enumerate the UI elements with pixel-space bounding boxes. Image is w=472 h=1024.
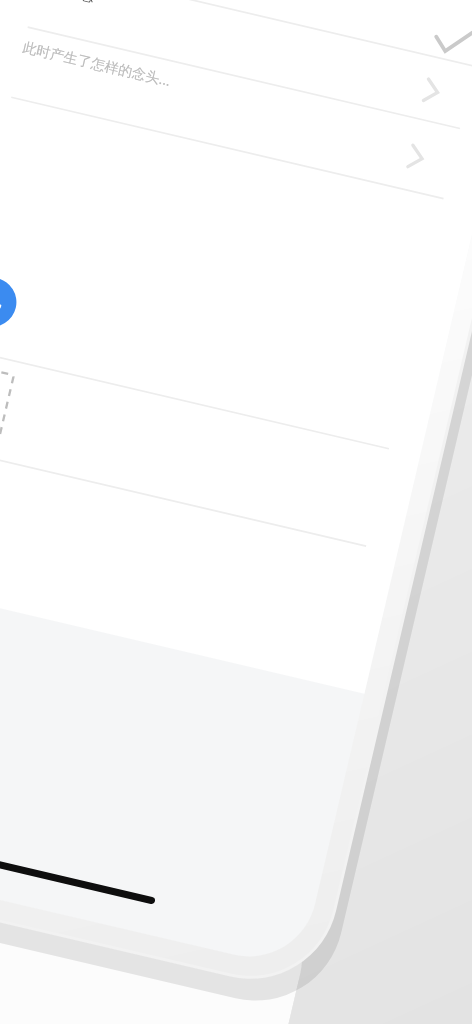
button[interactable]: Date and time 2月9日 22:25 xyxy=(27,0,472,69)
button[interactable]: Save xyxy=(404,3,472,76)
staticText: 此时产生了怎样的念头... xyxy=(21,37,173,90)
button[interactable]: Voice input xyxy=(0,271,25,336)
staticText: 生活随想 xyxy=(36,0,96,5)
button[interactable]: Add attachment xyxy=(0,351,19,464)
button[interactable]: 此时产生了怎样的念头... xyxy=(0,23,472,201)
button[interactable]: 生活随想 xyxy=(12,0,472,131)
